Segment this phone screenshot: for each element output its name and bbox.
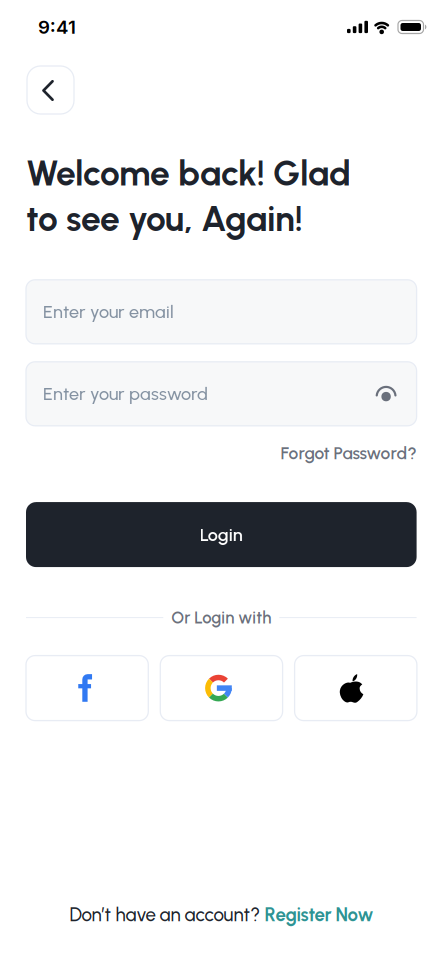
staticText: Enter your password <box>43 383 208 405</box>
staticText: Welcome back! Glad <box>26 152 351 194</box>
staticText: 9:41 <box>38 16 76 38</box>
staticText: Don’t have an account? <box>69 904 260 926</box>
button[interactable]: Login with Facebook <box>26 656 148 721</box>
staticText: Register Now <box>264 904 373 926</box>
staticText: to see you, Again! <box>26 197 303 240</box>
staticText: Forgot Password? <box>281 443 417 464</box>
staticText: Or Login with <box>171 608 271 628</box>
button[interactable]: Back <box>27 66 74 114</box>
button[interactable]: Login with Google <box>160 656 283 721</box>
button[interactable]: Forgot Password? <box>281 443 417 464</box>
button[interactable]: Login <box>26 502 417 567</box>
button[interactable]: Login with Apple <box>295 656 417 721</box>
button[interactable]: Register Now <box>264 904 373 926</box>
button[interactable]: Show password <box>376 386 397 402</box>
staticText: Login <box>200 524 243 545</box>
staticText: Enter your email <box>43 301 174 323</box>
